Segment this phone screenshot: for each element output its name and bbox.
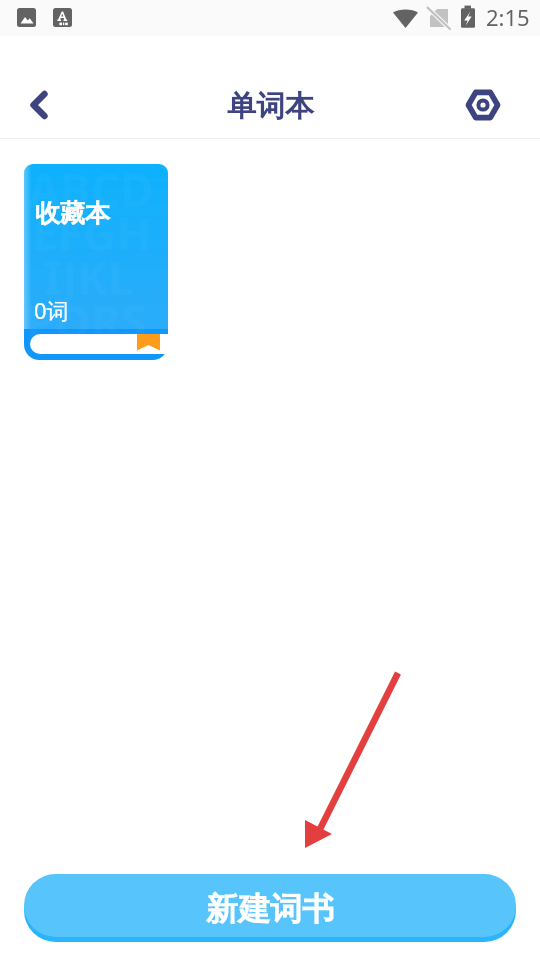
staticText: 单词本 — [227, 88, 314, 125]
button[interactable]: Settings — [459, 81, 507, 129]
staticText: 新建词书 — [206, 889, 334, 929]
staticText: IJKL — [44, 246, 134, 309]
staticText: EFGH — [32, 202, 152, 265]
staticText: PQRS — [26, 290, 147, 353]
button[interactable]: ABCD — [24, 164, 168, 360]
button[interactable]: 新建词书 — [24, 874, 516, 942]
staticText: 0词 — [34, 295, 69, 325]
button[interactable]: Back — [15, 81, 63, 129]
staticText: 2:15 — [486, 2, 530, 32]
staticText: 收藏本 — [35, 198, 110, 229]
staticText: ABCD — [28, 164, 154, 221]
